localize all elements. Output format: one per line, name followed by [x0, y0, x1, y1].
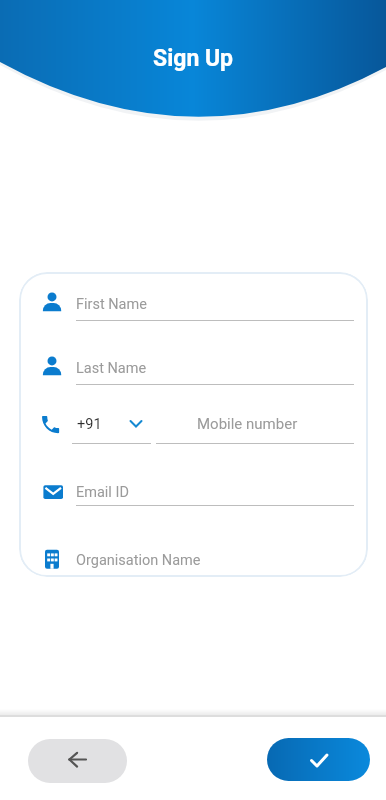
button[interactable]: Last Name: [76, 358, 354, 378]
staticText: Last Name: [76, 360, 147, 377]
button[interactable]: Organisation Name: [76, 550, 354, 570]
staticText: Mobile number: [197, 415, 298, 433]
staticText: +91: [77, 416, 102, 433]
button[interactable]: +91: [77, 414, 151, 434]
staticText: Sign Up: [153, 45, 234, 72]
button[interactable]: First Name: [76, 294, 354, 314]
button[interactable]: [267, 738, 370, 781]
button[interactable]: [28, 739, 127, 783]
button[interactable]: Email ID: [76, 482, 354, 502]
button[interactable]: Mobile number: [148, 414, 346, 434]
staticText: Organisation Name: [76, 552, 201, 569]
staticText: First Name: [76, 296, 147, 313]
staticText: Email ID: [76, 484, 129, 501]
